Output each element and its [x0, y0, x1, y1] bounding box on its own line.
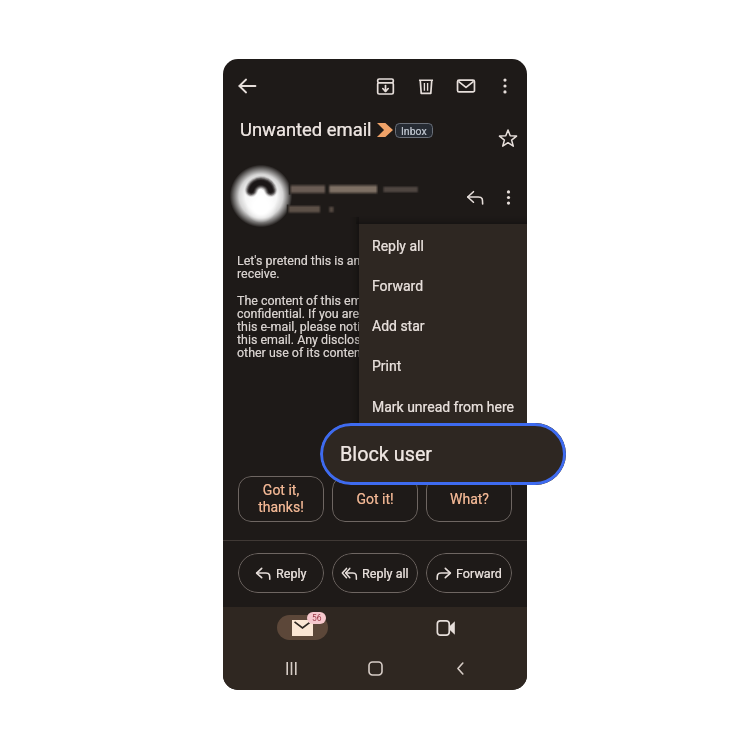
button[interactable]: More options	[491, 72, 519, 100]
button[interactable]: Got it!	[332, 476, 418, 522]
staticText: Unwanted email	[240, 119, 372, 141]
button[interactable]: Home	[364, 657, 386, 679]
button[interactable]: Archive	[371, 72, 399, 100]
button[interactable]: Print	[359, 346, 527, 386]
button[interactable]: Delete	[412, 72, 440, 100]
button[interactable]: Reply all	[359, 226, 527, 266]
staticText: Forward	[372, 278, 424, 294]
staticText: Block user	[340, 443, 433, 466]
button[interactable]: Video call	[433, 615, 459, 641]
staticText: Reply all	[372, 238, 424, 254]
staticText: Reply	[276, 566, 307, 581]
staticText: Forward	[456, 566, 502, 581]
staticText: The content of this email is intended to…	[237, 293, 518, 360]
staticText: Got it, thanks!	[258, 482, 304, 516]
button[interactable]: Back	[449, 657, 471, 679]
button[interactable]: Forward	[426, 553, 512, 593]
button[interactable]: Reply	[462, 184, 488, 210]
button[interactable]: Back	[233, 72, 261, 100]
staticText: Print	[372, 358, 402, 374]
staticText: What?	[450, 491, 489, 507]
button[interactable]: Star	[495, 125, 521, 151]
button[interactable]: More options	[495, 184, 521, 210]
button[interactable]: Mark unread	[452, 72, 480, 100]
button[interactable]: Mark unread from here	[359, 387, 527, 427]
button[interactable]: Recent apps	[280, 657, 302, 679]
button[interactable]: Reply	[238, 553, 324, 593]
staticText: Mark unread from here	[372, 399, 515, 415]
button[interactable]: Reply all	[332, 553, 418, 593]
staticText: Inbox	[401, 125, 427, 137]
staticText: Reply all	[362, 566, 409, 581]
staticText: Add star	[372, 318, 425, 334]
button[interactable]: Got it, thanks!	[238, 476, 324, 522]
button[interactable]: Mail	[277, 615, 328, 640]
button[interactable]: Add star	[359, 306, 527, 346]
staticText: 56	[312, 613, 322, 623]
staticText: Let's pretend this is an email you don't…	[237, 253, 491, 281]
button[interactable]: Block user	[320, 423, 566, 485]
button[interactable]: What?	[426, 476, 512, 522]
button[interactable]: Forward	[359, 266, 527, 306]
staticText: Got it!	[356, 491, 394, 507]
